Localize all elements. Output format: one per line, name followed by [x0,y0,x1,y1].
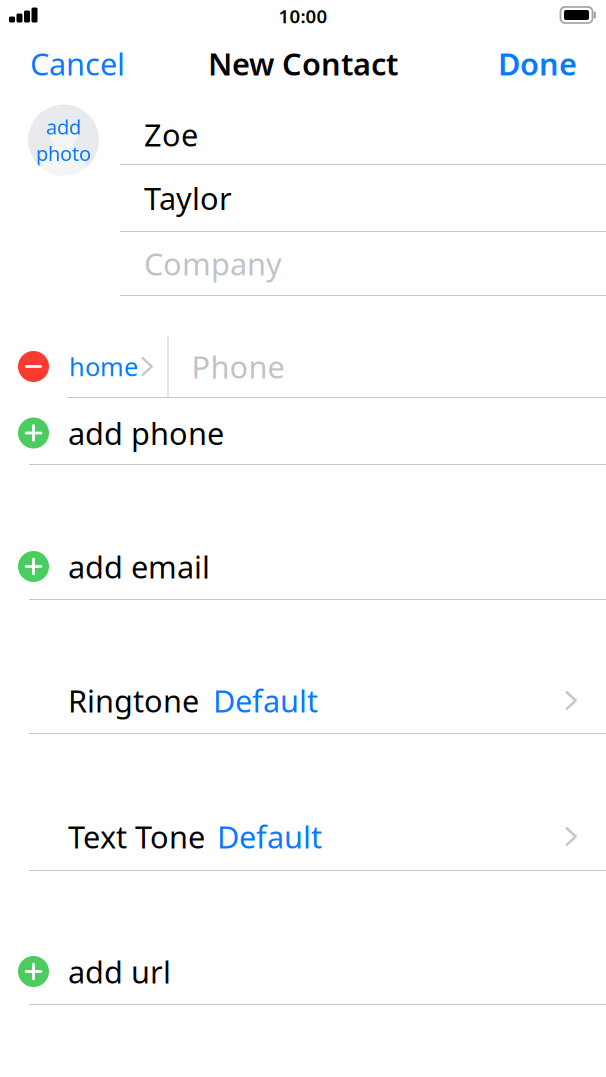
button[interactable]: add phone [0,398,606,464]
staticText: Cancel [30,43,125,84]
staticText: home [69,350,138,383]
staticText: photo [36,140,91,167]
staticText: Phone [191,346,284,387]
staticText: Default [213,680,318,721]
button[interactable]: Ringtone [0,668,606,733]
button[interactable]: Taylor [120,165,606,231]
staticText: add phone [68,413,224,453]
staticText: 10:00 [278,4,327,28]
staticText: Zoe [144,114,198,155]
button[interactable]: Zoe [120,99,606,164]
staticText: add [46,113,81,140]
staticText: add url [68,951,171,992]
button[interactable]: add [28,104,99,175]
staticText: New Contact [208,43,398,84]
staticText: Taylor [144,178,232,218]
staticText: Company [144,243,282,284]
button[interactable]: add url [0,939,606,1004]
button[interactable]: home [69,350,153,383]
staticText: Done [498,43,577,84]
button[interactable]: add email [0,534,606,599]
button[interactable]: Company [120,232,606,295]
button[interactable]: Cancel [30,43,125,84]
staticText: Text Tone [68,816,205,857]
button[interactable]: Phone [168,336,606,397]
staticText: Ringtone [68,680,199,721]
staticText: add email [68,546,210,587]
button[interactable]: Done [498,43,577,84]
staticText: Default [217,816,322,857]
button[interactable]: Delete phone [18,351,49,382]
button[interactable]: Text Tone [0,803,606,870]
